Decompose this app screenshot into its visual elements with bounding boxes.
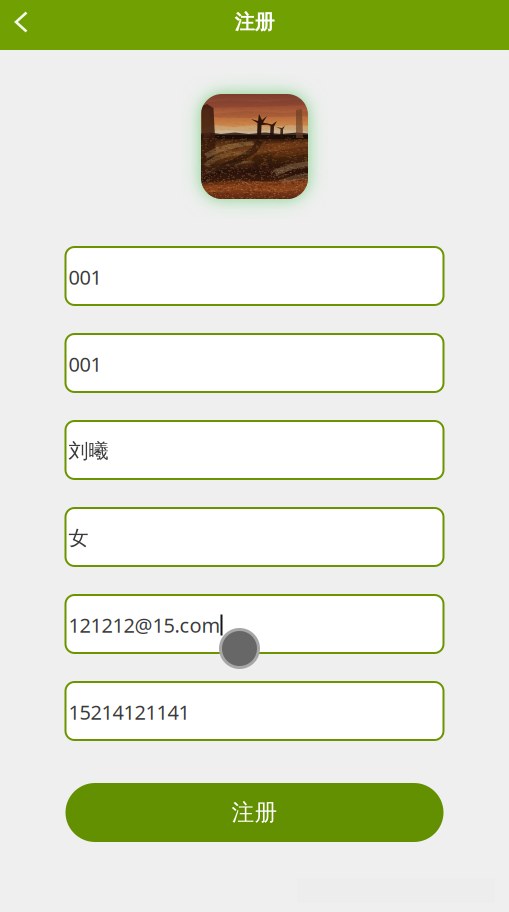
staticText: 121212@15.com <box>68 612 220 638</box>
staticText: 001 <box>68 264 101 290</box>
staticText: 15214121141 <box>68 699 189 725</box>
button[interactable]: 121212@15.com <box>65 595 443 653</box>
staticText: 注册 <box>234 10 274 34</box>
button[interactable]: 001 <box>65 247 443 305</box>
staticText: 注册 <box>231 799 277 826</box>
button[interactable]: Change avatar <box>201 94 308 199</box>
button[interactable]: 注册 <box>65 783 443 842</box>
staticText: 女 <box>68 526 88 550</box>
button[interactable]: Back <box>0 0 42 44</box>
staticText: 刘曦 <box>68 439 108 463</box>
button[interactable]: 001 <box>65 334 443 392</box>
staticText: 001 <box>68 351 101 377</box>
button[interactable]: 女 <box>65 508 443 566</box>
button[interactable]: 刘曦 <box>65 421 443 479</box>
button[interactable]: 15214121141 <box>65 682 443 740</box>
